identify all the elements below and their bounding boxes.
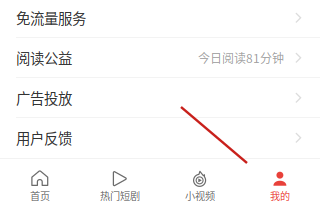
button[interactable]: 免流量服务 bbox=[0, 0, 320, 38]
button[interactable]: 用户反馈 bbox=[0, 118, 320, 158]
button[interactable]: 小视频 bbox=[160, 159, 240, 201]
button[interactable]: 阅读公益 bbox=[0, 38, 320, 78]
staticText: 用户反馈 bbox=[16, 127, 72, 148]
staticText: 热门短剧 bbox=[100, 188, 140, 201]
staticText: 免流量服务 bbox=[16, 7, 86, 28]
staticText: 阅读公益 bbox=[16, 47, 72, 68]
staticText: 广告投放 bbox=[16, 87, 72, 108]
button[interactable]: 热门短剧 bbox=[80, 159, 160, 201]
staticText: 首页 bbox=[30, 188, 50, 201]
staticText: 我的 bbox=[270, 188, 290, 201]
staticText: 小视频 bbox=[185, 188, 215, 201]
button[interactable]: 广告投放 bbox=[0, 78, 320, 118]
button[interactable]: 我的 bbox=[240, 159, 320, 201]
staticText: 今日阅读81分钟 bbox=[198, 49, 284, 66]
button[interactable]: 首页 bbox=[0, 159, 80, 201]
